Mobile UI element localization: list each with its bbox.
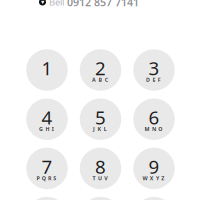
button[interactable]: 6 M N O: [133, 98, 175, 140]
staticText: GHI: [39, 125, 54, 133]
staticText: Bell: [49, 0, 64, 8]
staticText: 5: [95, 105, 106, 130]
button[interactable]: Pound: [133, 197, 175, 200]
button[interactable]: 8 T U V: [80, 148, 121, 189]
staticText: JKL: [93, 125, 107, 133]
staticText: WXYZ: [142, 175, 164, 182]
button[interactable]: 5 J K L: [80, 98, 121, 140]
staticText: 9: [148, 154, 159, 179]
staticText: DEF: [146, 76, 161, 83]
button[interactable]: 7 P Q R S: [26, 148, 68, 189]
staticText: 8: [95, 154, 106, 179]
staticText: 4: [41, 105, 52, 130]
staticText: PQRS: [36, 175, 56, 182]
staticText: 3: [148, 56, 159, 80]
staticText: 6: [148, 105, 159, 130]
button[interactable]: 9 W X Y Z: [133, 148, 175, 189]
button[interactable]: Star: [26, 197, 68, 200]
staticText: 2: [95, 56, 106, 80]
staticText: 0912 857 7141: [67, 0, 139, 9]
button[interactable]: ▾: [39, 0, 139, 9]
staticText: ABC: [92, 76, 108, 83]
button[interactable]: 2 A B C: [80, 49, 121, 91]
staticText: TUV: [93, 175, 107, 182]
staticText: MNO: [145, 125, 162, 133]
staticText: 1: [41, 56, 52, 80]
button[interactable]: 4 G H I: [26, 98, 68, 140]
button[interactable]: 0 Plus: [80, 197, 121, 200]
staticText: 7: [41, 154, 52, 179]
button[interactable]: 3 D E F: [133, 49, 175, 91]
button[interactable]: 1: [26, 49, 68, 91]
staticText: ▾: [41, 0, 44, 6]
